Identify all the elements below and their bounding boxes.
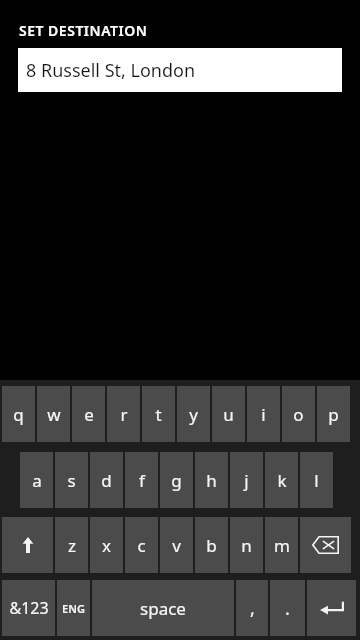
button[interactable]: t [142,386,175,442]
staticText: o [293,403,304,426]
button[interactable]: Shift [2,517,53,573]
button[interactable]: n [230,517,263,573]
staticText: n [241,534,252,557]
staticText: a [32,469,42,492]
button[interactable]: p [317,386,350,442]
button[interactable]: o [282,386,315,442]
button[interactable]: s [55,452,88,508]
button[interactable]: b [195,517,228,573]
staticText: c [137,534,146,557]
staticText: , [250,596,255,621]
button[interactable]: g [160,452,193,508]
button[interactable]: k [265,452,298,508]
button[interactable]: . [270,580,305,636]
staticText: f [139,469,145,492]
button[interactable]: i [247,386,280,442]
staticText: ENG [62,601,85,616]
staticText: e [84,403,94,426]
staticText: s [67,469,76,492]
button[interactable]: h [195,452,228,508]
button[interactable]: v [160,517,193,573]
button[interactable]: l [300,452,333,508]
staticText: . [285,596,290,621]
staticText: w [47,403,61,426]
staticText: l [314,469,319,492]
staticText: i [261,403,266,426]
button[interactable]: &123 [2,580,55,636]
button[interactable]: r [107,386,140,442]
button[interactable]: m [265,517,298,573]
button[interactable]: Enter [307,580,356,636]
staticText: k [277,469,287,492]
staticText: p [328,403,339,426]
button[interactable]: c [125,517,158,573]
staticText: x [102,534,111,557]
button[interactable]: u [212,386,245,442]
button[interactable]: x [90,517,123,573]
staticText: r [120,403,128,426]
staticText: j [244,469,249,492]
staticText: m [274,534,290,557]
staticText: y [189,403,198,426]
button[interactable]: w [37,386,70,442]
button[interactable]: e [72,386,105,442]
staticText: t [155,403,162,426]
staticText: d [101,469,112,492]
staticText: space [140,597,186,620]
button[interactable]: j [230,452,263,508]
button[interactable]: z [55,517,88,573]
button[interactable]: 8 Russell St, London [18,48,342,92]
staticText: g [171,469,182,492]
button[interactable]: q [2,386,35,442]
staticText: v [172,534,181,557]
staticText: h [206,469,217,492]
staticText: SET DESTINATION [19,21,148,40]
staticText: b [206,534,217,557]
staticText: &123 [9,597,49,619]
button[interactable]: Backspace [300,517,351,573]
button[interactable]: y [177,386,210,442]
button[interactable]: space [92,580,234,636]
staticText: q [13,403,24,426]
button[interactable]: f [125,452,158,508]
staticText: z [68,534,76,557]
button[interactable]: d [90,452,123,508]
button[interactable]: ENG [57,580,90,636]
staticText: u [223,403,234,426]
staticText: 8 Russell St, London [26,58,196,83]
button[interactable]: a [20,452,53,508]
button[interactable]: , [236,580,268,636]
